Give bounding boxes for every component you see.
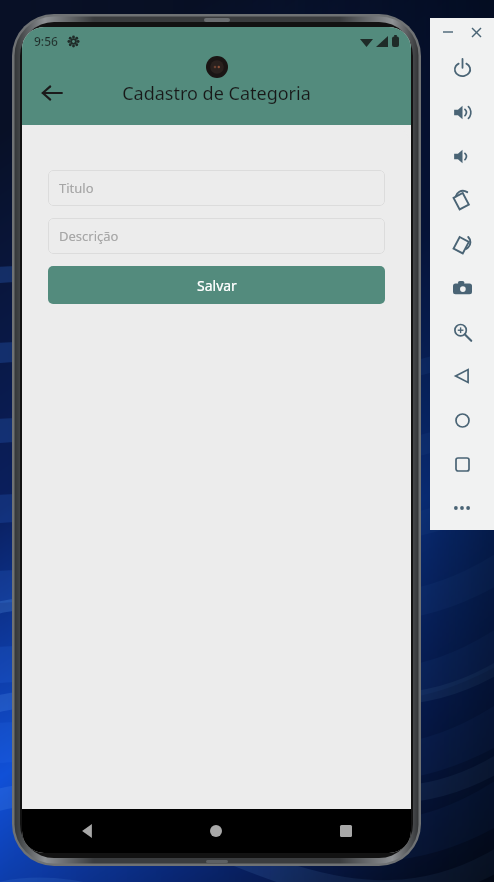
staticText: Titulo	[59, 179, 94, 197]
button[interactable]: Rotate right	[430, 222, 494, 266]
staticText: Descrição	[59, 227, 119, 245]
staticText: Cadastro de Categoria	[122, 81, 311, 106]
button[interactable]: Take screenshot	[430, 266, 494, 310]
button[interactable]: Back	[430, 354, 494, 398]
button[interactable]: Volume up	[430, 90, 494, 134]
button[interactable]: Recent apps	[281, 809, 411, 853]
button[interactable]: Zoom	[430, 310, 494, 354]
button[interactable]: Descrição	[48, 218, 385, 254]
button[interactable]: Minimize	[438, 22, 458, 42]
button[interactable]: Power	[430, 46, 494, 90]
button[interactable]: Home	[151, 809, 281, 853]
staticText: 9:56	[34, 33, 58, 49]
button[interactable]: Back	[30, 71, 74, 115]
button[interactable]: Overview	[430, 442, 494, 486]
button[interactable]: Salvar	[48, 266, 385, 304]
button[interactable]: Close	[466, 22, 486, 42]
button[interactable]: Home	[430, 398, 494, 442]
button[interactable]: Back	[22, 809, 151, 853]
button[interactable]: Titulo	[48, 170, 385, 206]
button[interactable]: Rotate left	[430, 178, 494, 222]
staticText: Salvar	[197, 276, 237, 295]
button[interactable]: More	[430, 486, 494, 530]
button[interactable]: Volume down	[430, 134, 494, 178]
